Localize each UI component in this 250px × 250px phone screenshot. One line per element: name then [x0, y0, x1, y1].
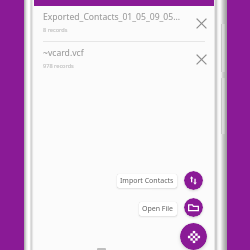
button[interactable]: Import Contacts — [184, 171, 203, 190]
staticText: Open File — [142, 204, 174, 214]
button[interactable]: Open File — [184, 198, 203, 217]
button[interactable]: Remove ~vcard.vcf — [194, 52, 208, 66]
staticText: Import Contacts — [120, 176, 174, 186]
button[interactable]: Open actions menu — [180, 223, 207, 250]
staticText: 8 records — [43, 26, 68, 34]
button[interactable]: Exported_Contacts_01_05_09_05... — [34, 6, 214, 41]
button[interactable]: Remove Exported_Contacts_01_05_09_05... — [194, 16, 208, 30]
button[interactable]: Import Contacts — [117, 174, 177, 188]
staticText: 978 records — [43, 62, 74, 70]
staticText: ~vcard.vcf — [43, 47, 183, 59]
staticText: Exported_Contacts_01_05_09_05... — [43, 11, 183, 23]
button[interactable]: ~vcard.vcf — [34, 42, 214, 77]
button[interactable]: Open File — [139, 202, 177, 216]
